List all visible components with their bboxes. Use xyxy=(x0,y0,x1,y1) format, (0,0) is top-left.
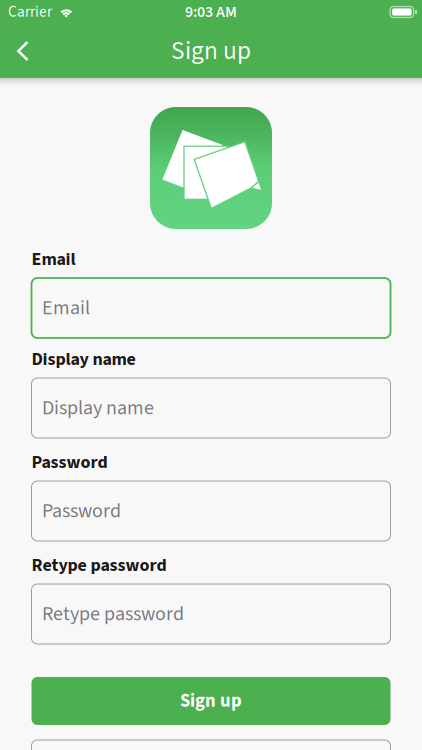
staticText: Retype password xyxy=(42,600,184,628)
button[interactable]: Sign up xyxy=(31,677,390,725)
button[interactable]: Back xyxy=(3,24,43,78)
staticText: Display name xyxy=(42,394,154,422)
staticText: Display name xyxy=(31,347,135,372)
staticText: Email xyxy=(31,247,75,272)
staticText: Sign up xyxy=(171,33,251,69)
staticText: Password xyxy=(31,450,107,475)
staticText: Retype password xyxy=(31,553,166,578)
staticText: Sign up xyxy=(180,688,242,714)
staticText: Carrier xyxy=(8,1,52,23)
staticText: 9:03 AM xyxy=(185,1,237,23)
button[interactable]: Log in xyxy=(31,740,390,750)
staticText: Email xyxy=(42,294,90,322)
staticText: Password xyxy=(42,497,121,525)
